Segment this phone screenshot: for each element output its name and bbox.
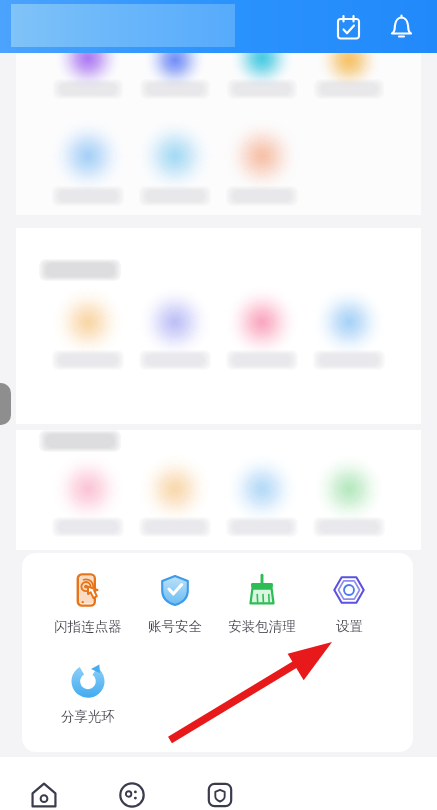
- button[interactable]: 分享光环: [45, 661, 131, 725]
- button[interactable]: Drawer handle: [0, 383, 11, 425]
- staticText: 闪指连点器: [54, 618, 122, 635]
- staticText: 分享光环: [61, 708, 115, 725]
- staticText: 安装包清理: [228, 618, 296, 635]
- button[interactable]: 安装包清理: [219, 571, 305, 635]
- button[interactable]: Search: [11, 4, 235, 47]
- staticText: 设置: [336, 618, 363, 635]
- button[interactable]: Discover: [88, 757, 176, 810]
- button[interactable]: Home: [0, 757, 88, 810]
- button[interactable]: Notifications: [378, 4, 424, 50]
- button[interactable]: 账号安全: [132, 571, 218, 635]
- button[interactable]: Apps: [176, 757, 264, 810]
- button[interactable]: 闪指连点器: [45, 571, 131, 635]
- button[interactable]: 设置: [306, 571, 392, 635]
- button[interactable]: Tasks: [325, 4, 371, 50]
- staticText: 账号安全: [148, 618, 202, 635]
